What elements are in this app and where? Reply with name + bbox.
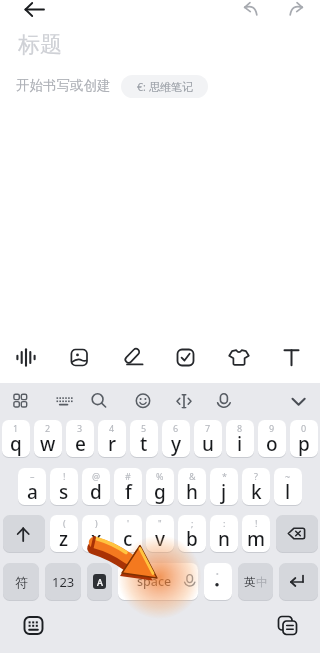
staticText: ' (127, 517, 130, 529)
staticText: o (266, 431, 278, 457)
button[interactable] (84, 386, 114, 416)
button[interactable]: 2 (34, 420, 62, 457)
button[interactable]: # (114, 468, 142, 505)
staticText: * (222, 470, 227, 482)
button[interactable] (209, 386, 239, 416)
button[interactable] (240, 0, 268, 28)
button[interactable]: A (87, 563, 112, 600)
button[interactable]: 123 (45, 563, 81, 600)
button[interactable]: ? (242, 468, 270, 505)
staticText: 3 (77, 422, 83, 434)
staticText: 4 (109, 422, 115, 434)
staticText: A (97, 576, 103, 588)
button[interactable] (49, 386, 79, 416)
staticText: 5 (141, 422, 147, 434)
button[interactable]: * (210, 468, 238, 505)
button[interactable] (61, 339, 97, 375)
button[interactable] (18, 611, 48, 641)
button[interactable]: ~ (274, 468, 302, 505)
staticText: p (298, 431, 310, 457)
staticText: 6 (173, 422, 179, 434)
button[interactable]: @ (82, 468, 110, 505)
staticText: ! (255, 517, 258, 529)
staticText: e (75, 431, 86, 457)
staticText: 0 (301, 422, 307, 434)
button[interactable] (273, 611, 303, 641)
button[interactable]: : (210, 515, 238, 552)
button[interactable]: ; (178, 515, 206, 552)
button[interactable] (279, 563, 318, 600)
staticText: f (125, 479, 132, 505)
staticText: 英 (244, 575, 256, 589)
staticText: 思维笔记 (149, 80, 193, 94)
button[interactable]: 6 (162, 420, 190, 457)
button[interactable] (169, 386, 199, 416)
button[interactable] (3, 515, 45, 552)
staticText: & (189, 470, 196, 482)
staticText: u (202, 431, 214, 457)
button[interactable] (167, 339, 203, 375)
button[interactable] (5, 386, 35, 416)
button[interactable]: ( (50, 515, 78, 552)
button[interactable]: " (146, 515, 174, 552)
staticText: b (186, 526, 198, 552)
staticText: 123 (52, 573, 75, 591)
button[interactable]: 3 (66, 420, 94, 457)
button[interactable] (276, 515, 318, 552)
button[interactable]: space (118, 563, 198, 600)
button[interactable] (128, 386, 158, 416)
staticText: 开始书写或创建 (16, 77, 111, 94)
staticText: 2 (45, 422, 51, 434)
button[interactable]: €: (121, 75, 208, 98)
staticText: r (108, 431, 117, 457)
staticText: j (221, 479, 227, 505)
button[interactable]: 8 (226, 420, 254, 457)
staticText: ( (63, 517, 66, 529)
staticText: h (186, 479, 198, 505)
button[interactable] (8, 339, 44, 375)
staticText: ) (95, 517, 98, 529)
staticText: ! (63, 470, 66, 482)
button[interactable]: 9 (258, 420, 286, 457)
staticText: i (237, 431, 243, 457)
staticText: @ (92, 470, 101, 482)
staticText: w (40, 431, 56, 457)
staticText: # (125, 470, 131, 482)
button[interactable]: 4 (98, 420, 126, 457)
button[interactable] (284, 386, 314, 416)
staticText: 7 (205, 422, 211, 434)
staticText: z (59, 526, 69, 552)
button[interactable] (204, 563, 232, 600)
button[interactable]: ) (82, 515, 110, 552)
staticText: ? (254, 470, 258, 482)
staticText: c (123, 526, 133, 552)
button[interactable] (18, 0, 50, 24)
staticText: ; (191, 517, 194, 529)
button[interactable]: 7 (194, 420, 222, 457)
button[interactable]: ' (114, 515, 142, 552)
staticText: m (247, 526, 265, 552)
button[interactable]: 英 (238, 563, 273, 600)
button[interactable]: ! (50, 468, 78, 505)
staticText: k (251, 479, 262, 505)
button[interactable]: 符 (3, 563, 39, 600)
staticText: g (154, 479, 166, 505)
staticText: 1 (13, 422, 19, 434)
staticText: 符 (15, 574, 28, 590)
staticText: d (90, 479, 102, 505)
button[interactable]: – (18, 468, 46, 505)
button[interactable] (278, 0, 306, 28)
staticText: v (155, 526, 166, 552)
button[interactable]: & (178, 468, 206, 505)
button[interactable] (114, 339, 150, 375)
button[interactable] (220, 339, 256, 375)
button[interactable]: % (146, 468, 174, 505)
button[interactable]: 0 (290, 420, 318, 457)
staticText: a (27, 479, 38, 505)
button[interactable]: 1 (2, 420, 30, 457)
button[interactable] (273, 339, 309, 375)
staticText: 中 (256, 575, 268, 589)
button[interactable]: 5 (130, 420, 158, 457)
button[interactable]: ! (242, 515, 270, 552)
staticText: % (156, 470, 164, 482)
